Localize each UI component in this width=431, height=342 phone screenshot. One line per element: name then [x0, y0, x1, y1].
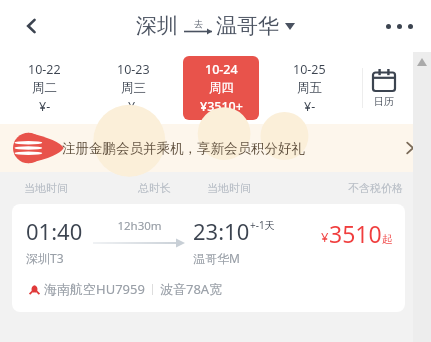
staticText: 周五: [297, 80, 322, 96]
staticText: 周三: [121, 80, 146, 96]
staticText: 波音78A宽: [160, 280, 223, 298]
staticText: 起: [382, 232, 393, 246]
staticText: 10-23: [117, 61, 150, 78]
staticText: 不含税价格: [348, 181, 403, 195]
staticText: 温哥华M: [193, 250, 240, 266]
staticText: ¥: [321, 228, 329, 246]
staticText: 10-25: [293, 61, 326, 78]
staticText: 深圳: [136, 13, 178, 39]
staticText: 3510: [329, 218, 382, 249]
button[interactable]: More options: [377, 4, 421, 48]
staticText: 总时长: [138, 181, 171, 195]
button[interactable]: 10-22: [6, 56, 83, 120]
staticText: ¥-: [39, 98, 51, 115]
staticText: 01:40: [26, 216, 83, 246]
staticText: 当地时间: [24, 181, 68, 195]
staticText: 温哥华: [216, 13, 279, 39]
button[interactable]: 10-23: [95, 56, 171, 120]
staticText: 周二: [32, 80, 57, 96]
button[interactable]: 10-25: [271, 56, 347, 120]
staticText: ¥-: [304, 98, 316, 115]
staticText: 日历: [374, 95, 394, 108]
staticText: ¥3510+: [200, 98, 243, 115]
button[interactable]: 01:40: [12, 204, 405, 312]
staticText: 10-22: [28, 61, 61, 78]
staticText: 23:10: [193, 216, 250, 246]
button[interactable]: 注册金鹏会员并乘机，享新会员积分好礼: [0, 124, 431, 172]
staticText: 12h30m: [117, 218, 162, 234]
staticText: 去: [194, 18, 203, 29]
staticText: 海南航空HU7959: [44, 280, 145, 298]
staticText: 注册金鹏会员并乘机，享新会员积分好礼: [62, 140, 305, 157]
staticText: ¥-: [128, 98, 140, 115]
button[interactable]: 日历: [361, 52, 407, 124]
staticText: +-1天: [250, 218, 275, 232]
button[interactable]: 10-24: [183, 56, 259, 120]
button[interactable]: Back: [14, 8, 50, 44]
staticText: 深圳T3: [26, 250, 64, 266]
button[interactable]: 深圳: [136, 13, 295, 39]
staticText: 周四: [209, 80, 234, 96]
staticText: 10-24: [205, 61, 238, 78]
staticText: 当地时间: [207, 181, 251, 195]
